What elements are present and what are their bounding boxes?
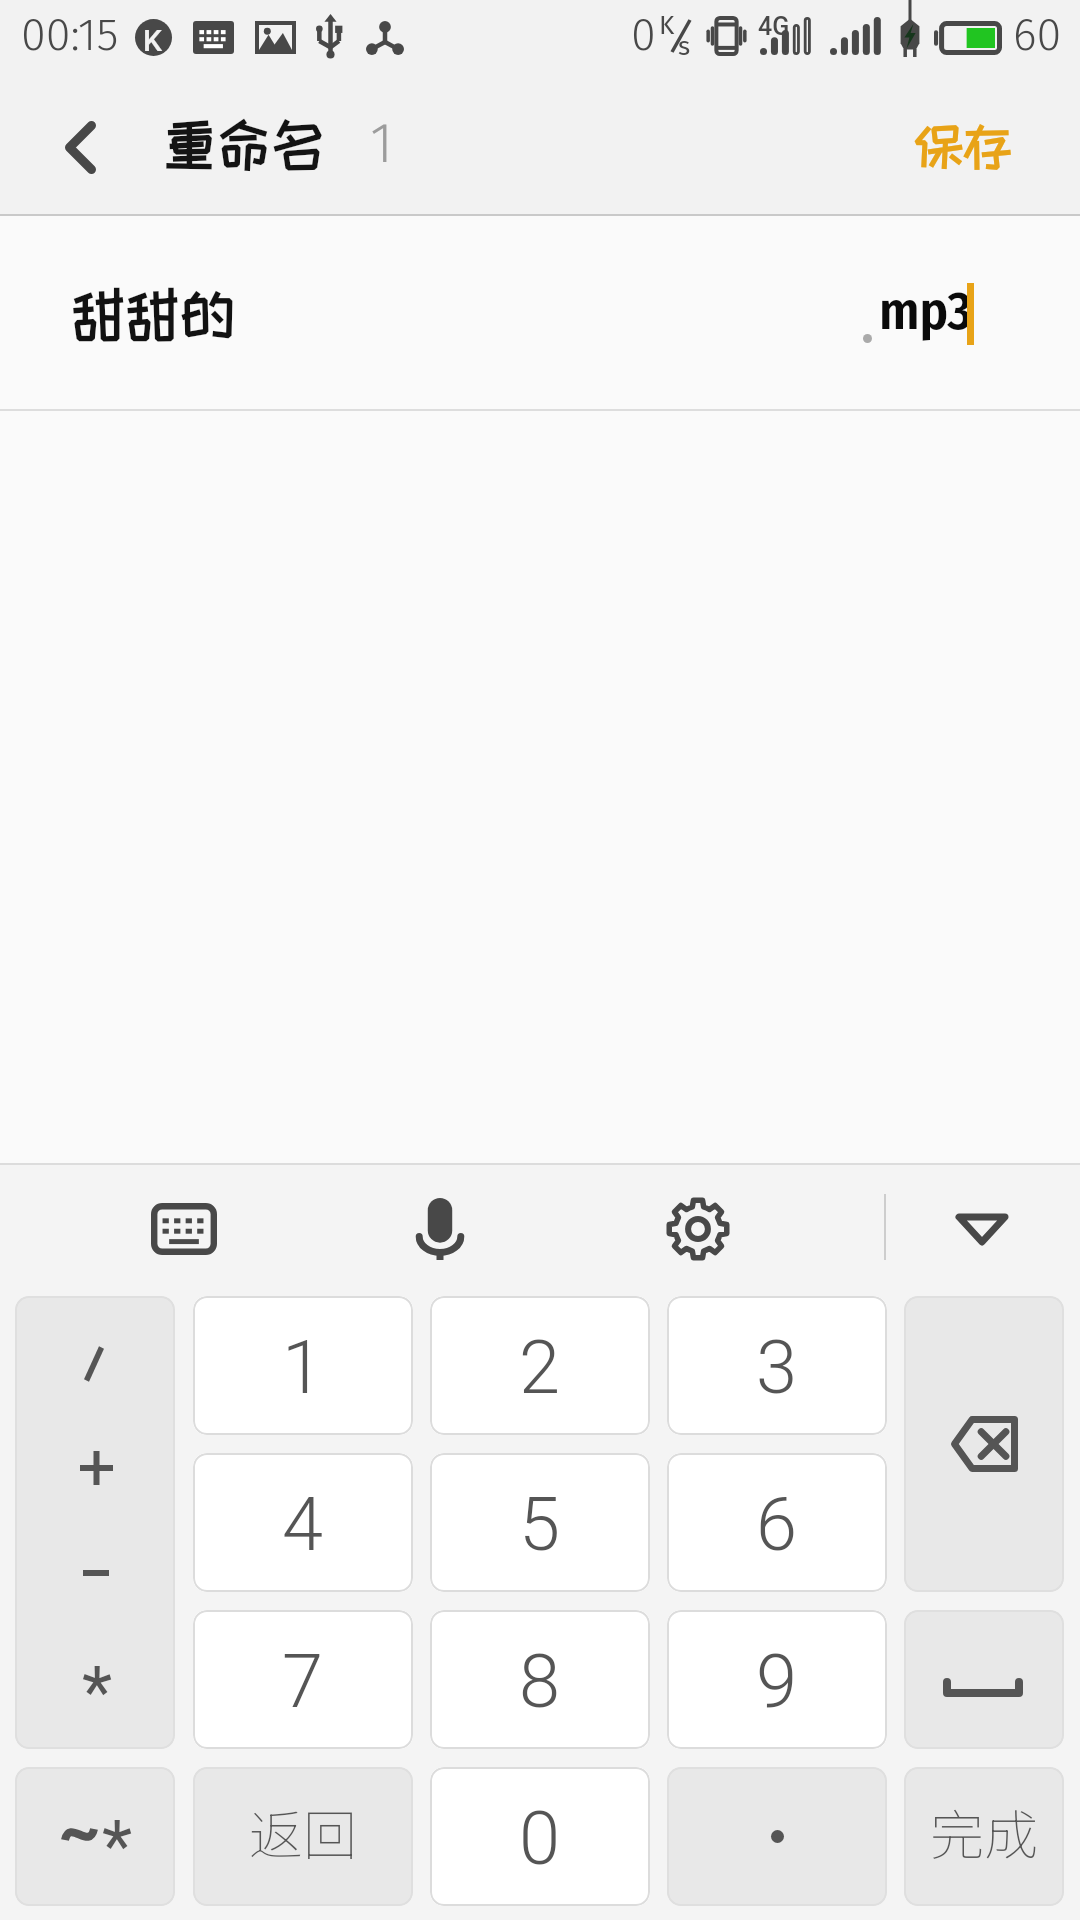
staticText: 保存 <box>914 119 1012 172</box>
staticText: 1 <box>370 110 394 177</box>
button[interactable]: 9 <box>667 1610 887 1749</box>
button[interactable]: * <box>15 1296 175 1749</box>
button[interactable]: Back <box>20 85 140 214</box>
staticText: * <box>82 1651 113 1733</box>
button[interactable]: Backspace <box>904 1296 1064 1592</box>
button[interactable]: Space <box>904 1610 1064 1749</box>
button[interactable]: Hide keyboard <box>918 1165 1046 1293</box>
staticText: 5 <box>519 1481 561 1568</box>
button[interactable]: Settings <box>634 1165 762 1293</box>
button[interactable]: 3 <box>667 1296 887 1435</box>
staticText: * <box>102 1805 133 1887</box>
button[interactable]: 2 <box>430 1296 650 1435</box>
button[interactable]: 8 <box>430 1610 650 1749</box>
staticText: s <box>678 31 691 62</box>
button[interactable]: Switch keyboard <box>120 1165 248 1293</box>
button[interactable] <box>667 1767 887 1906</box>
staticText: 1 <box>282 1324 324 1411</box>
staticText: 4G <box>758 12 790 41</box>
staticText: 60 <box>1013 8 1062 62</box>
staticText: 完成 <box>930 1792 1038 1870</box>
staticText: K <box>659 10 675 41</box>
staticText: 7 <box>282 1638 324 1725</box>
button[interactable]: * <box>15 1767 175 1906</box>
button[interactable]: 保存 <box>880 85 1045 214</box>
staticText: 3 <box>756 1324 798 1411</box>
button[interactable]: 0 <box>430 1767 650 1906</box>
staticText: 重命名 <box>162 114 325 173</box>
button[interactable]: 5 <box>430 1453 650 1592</box>
staticText: 甜甜的 <box>71 284 234 343</box>
button[interactable]: 完成 <box>904 1767 1064 1906</box>
button[interactable]: 甜甜的 <box>0 216 1080 409</box>
button[interactable]: 7 <box>193 1610 413 1749</box>
staticText: 0 <box>519 1795 561 1882</box>
staticText: 4 <box>282 1481 324 1568</box>
button[interactable]: 1 <box>193 1296 413 1435</box>
staticText: 2 <box>519 1324 561 1411</box>
button[interactable]: 6 <box>667 1453 887 1592</box>
staticText: 返回 <box>249 1792 357 1870</box>
staticText: K <box>143 23 162 58</box>
button[interactable]: 4 <box>193 1453 413 1592</box>
staticText: 00:15 <box>21 8 119 62</box>
staticText: 9 <box>756 1638 798 1725</box>
staticText: mp3 <box>879 279 972 343</box>
staticText: 8 <box>519 1638 561 1725</box>
button[interactable]: 返回 <box>193 1767 413 1906</box>
staticText: 6 <box>756 1481 798 1568</box>
staticText: 0 <box>631 8 656 62</box>
button[interactable]: Voice input <box>376 1165 504 1293</box>
